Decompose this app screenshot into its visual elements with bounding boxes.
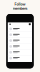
- staticText: Follow: [14, 2, 25, 6]
- button[interactable]: [8, 44, 32, 49]
- button[interactable]: [8, 32, 32, 38]
- button[interactable]: Back: [9, 24, 11, 25]
- staticText: members: [12, 6, 27, 11]
- button[interactable]: [8, 38, 32, 44]
- button[interactable]: [8, 26, 32, 32]
- button[interactable]: [8, 49, 32, 55]
- button[interactable]: Profile: [29, 23, 31, 25]
- button[interactable]: [8, 55, 32, 61]
